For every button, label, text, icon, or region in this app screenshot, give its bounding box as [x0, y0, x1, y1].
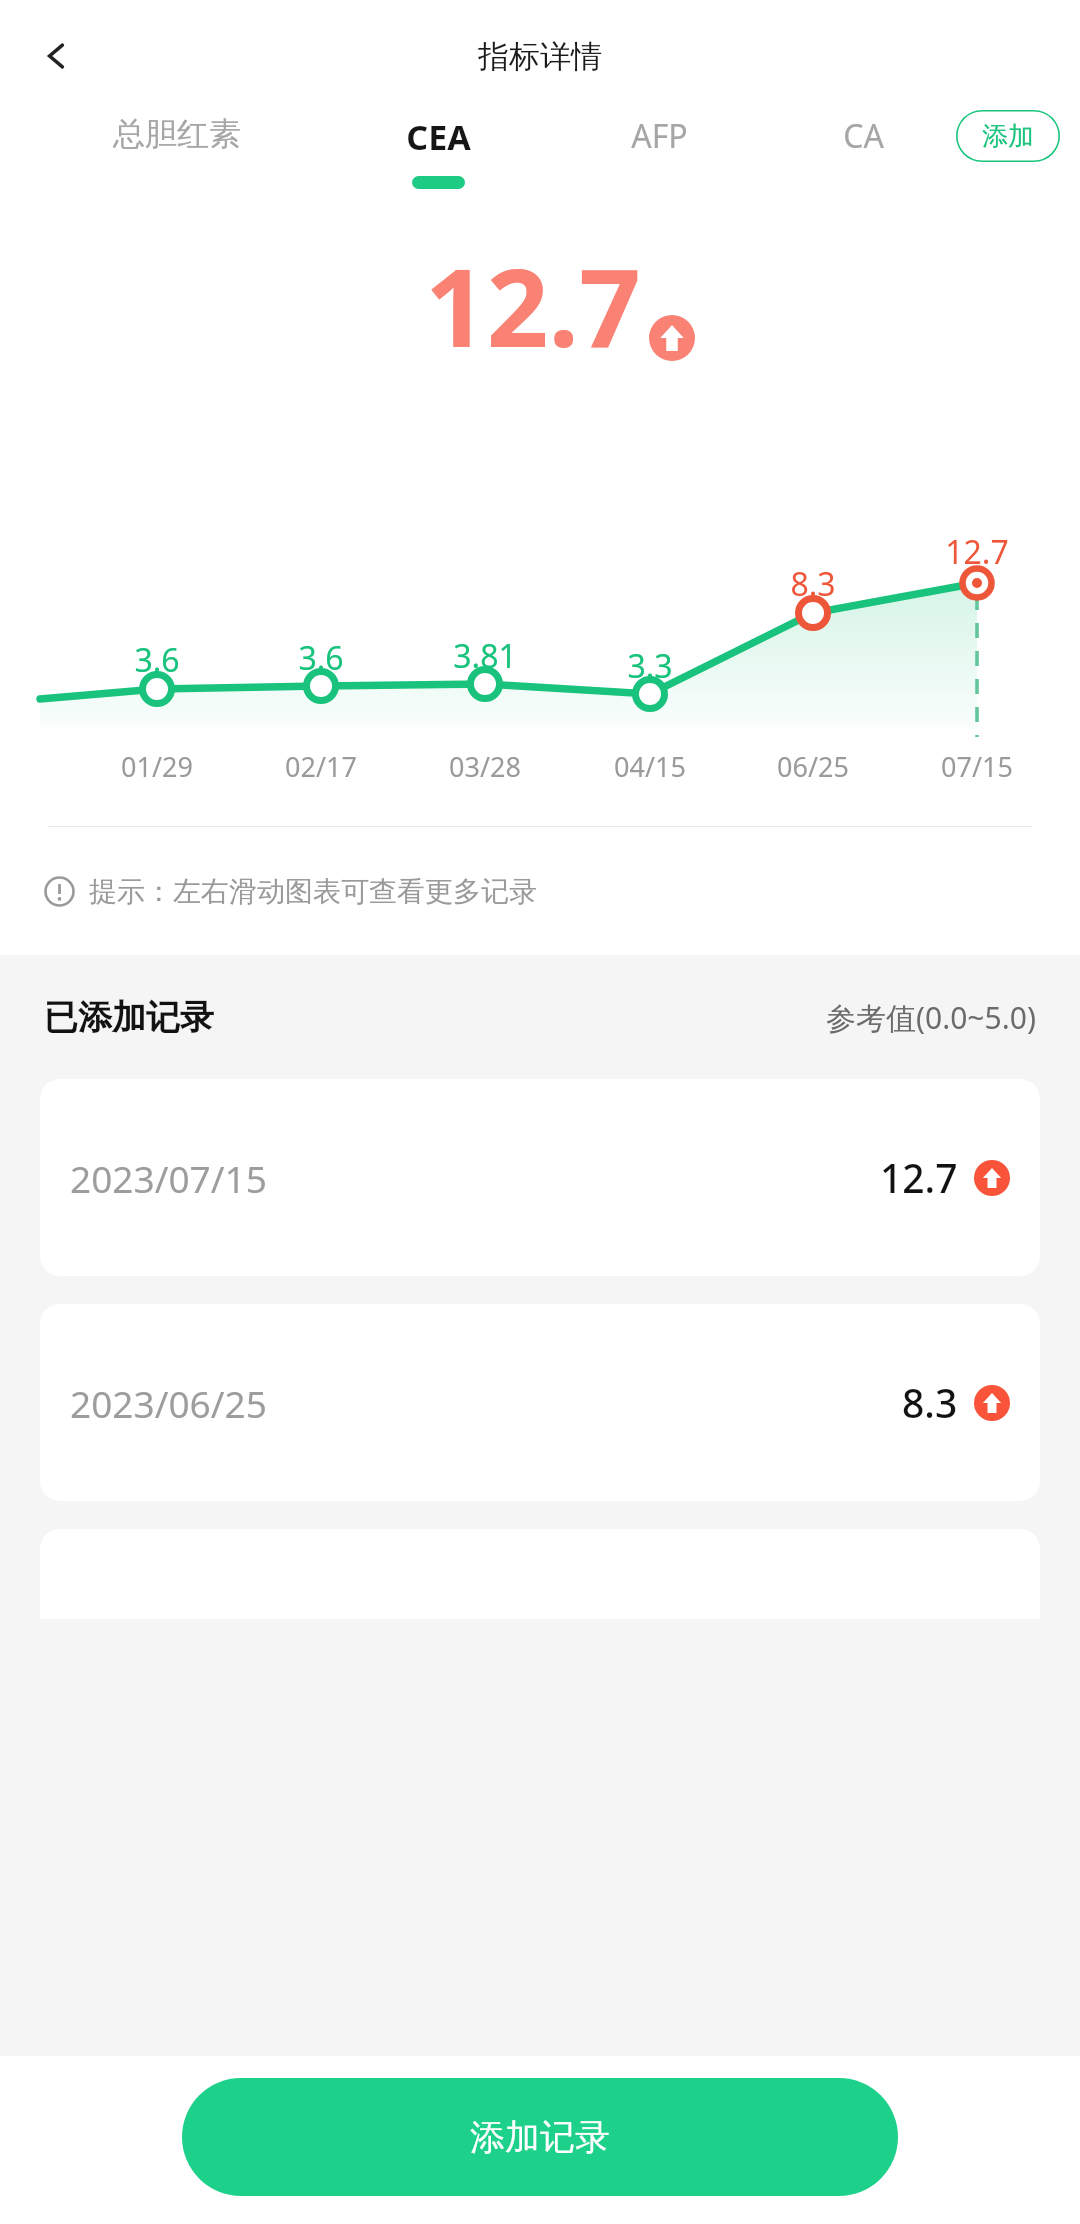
button[interactable]: 添加	[956, 110, 1060, 162]
staticText: 提示：左右滑动图表可查看更多记录	[89, 874, 537, 909]
staticText: 06/25	[753, 748, 873, 785]
staticText: 2023/06/25	[70, 1378, 267, 1428]
staticText: 3.6	[261, 636, 381, 680]
staticText: 04/15	[590, 748, 710, 785]
staticText: 02/17	[261, 748, 381, 785]
staticText: 8.3	[753, 562, 873, 606]
staticText: 12.7	[880, 1151, 958, 1204]
staticText: 总胆红素	[113, 114, 241, 154]
staticText: 01/29	[97, 748, 217, 785]
staticText: 添加记录	[470, 2115, 610, 2159]
button[interactable]: 总胆红素	[26, 104, 328, 196]
staticText: 12.7	[425, 232, 641, 379]
staticText: 3.6	[97, 638, 217, 682]
button[interactable]: 2023/07/15	[40, 1079, 1040, 1276]
button[interactable]: CEA	[328, 104, 549, 196]
staticText: 3.3	[590, 644, 710, 688]
staticText: 07/15	[917, 748, 1037, 785]
button[interactable]: AFP	[549, 104, 770, 196]
staticText: 指标详情	[478, 37, 602, 76]
staticText: AFP	[631, 114, 688, 158]
staticText: CEA	[406, 114, 471, 160]
staticText: 12.7	[917, 530, 1037, 574]
button[interactable]: Back	[24, 24, 88, 88]
button[interactable]: CA	[770, 104, 956, 196]
staticText: 已添加记录	[44, 996, 214, 1039]
staticText: 3.81	[425, 634, 545, 678]
staticText: 参考值(0.0~5.0)	[826, 997, 1036, 1038]
button[interactable]: 2023/06/25	[40, 1304, 1040, 1501]
staticText: 2023/07/15	[70, 1153, 267, 1203]
staticText: 添加	[982, 120, 1034, 153]
staticText: 03/28	[425, 748, 545, 785]
button[interactable]: 添加记录	[182, 2078, 898, 2196]
staticText: 8.3	[902, 1376, 958, 1429]
staticText: CA	[843, 114, 884, 158]
